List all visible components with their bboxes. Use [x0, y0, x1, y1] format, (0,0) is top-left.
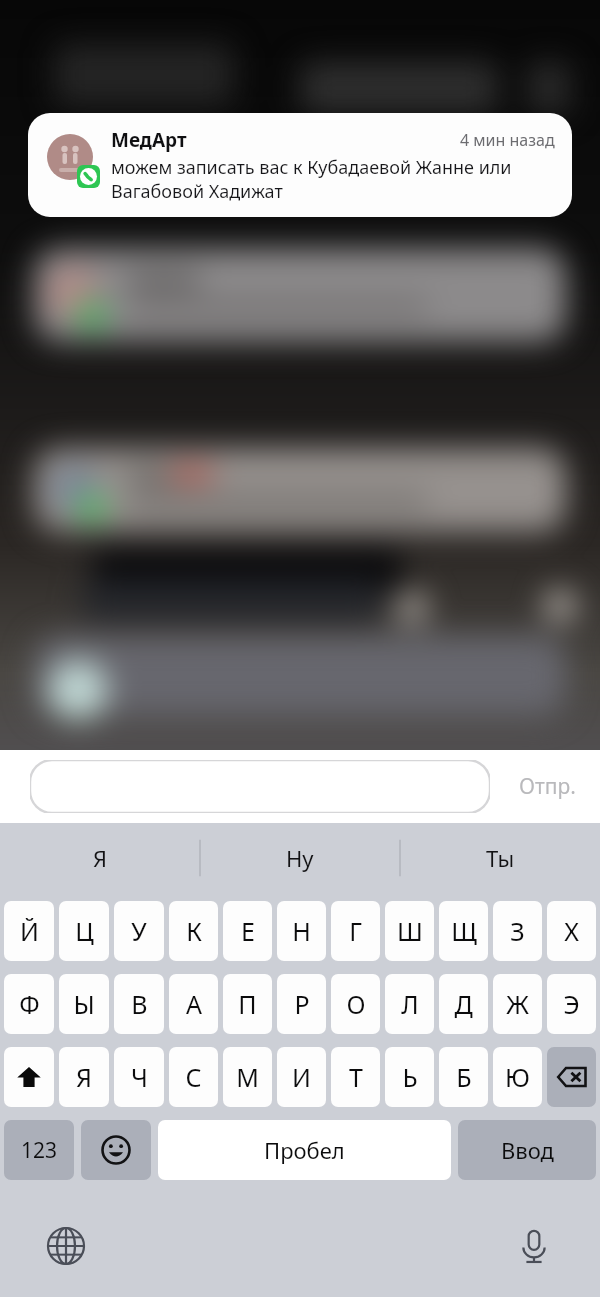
- button[interactable]: Л: [385, 974, 434, 1034]
- button[interactable]: 123: [4, 1120, 74, 1180]
- button[interactable]: Ы: [59, 974, 109, 1034]
- button[interactable]: Э: [547, 974, 596, 1034]
- staticText: Б: [456, 1060, 472, 1094]
- staticText: И: [292, 1060, 311, 1094]
- button[interactable]: Р: [277, 974, 326, 1034]
- staticText: К: [186, 914, 202, 948]
- button[interactable]: П: [223, 974, 272, 1034]
- staticText: Й: [20, 914, 39, 948]
- button[interactable]: Ты: [400, 823, 600, 893]
- button[interactable]: Ввод: [458, 1120, 596, 1180]
- staticText: В: [131, 987, 148, 1021]
- staticText: Ы: [73, 987, 95, 1021]
- button[interactable]: Д: [439, 974, 488, 1034]
- button[interactable]: Ф: [4, 974, 54, 1034]
- button[interactable]: Shift: [4, 1047, 54, 1107]
- staticText: П: [238, 987, 257, 1021]
- staticText: Ввод: [501, 1135, 554, 1165]
- button[interactable]: М: [223, 1047, 272, 1107]
- staticText: Ь: [402, 1060, 418, 1094]
- staticText: Ш: [397, 914, 423, 948]
- button[interactable]: У: [114, 901, 164, 961]
- button[interactable]: [30, 760, 490, 813]
- button[interactable]: Г: [331, 901, 380, 961]
- staticText: Я: [76, 1060, 92, 1094]
- button[interactable]: Change language: [36, 1216, 96, 1276]
- staticText: Э: [563, 987, 580, 1021]
- button[interactable]: Й: [4, 901, 54, 961]
- button[interactable]: В: [114, 974, 164, 1034]
- staticText: Ж: [506, 987, 529, 1021]
- staticText: У: [131, 914, 147, 948]
- button[interactable]: Backspace: [547, 1047, 596, 1107]
- staticText: Г: [349, 914, 362, 948]
- button[interactable]: Е: [223, 901, 272, 961]
- staticText: А: [186, 987, 202, 1021]
- button[interactable]: МедАрт: [28, 113, 572, 217]
- staticText: Ты: [486, 843, 515, 873]
- button[interactable]: Ш: [385, 901, 434, 961]
- button[interactable]: Ч: [114, 1047, 164, 1107]
- button[interactable]: Ж: [493, 974, 542, 1034]
- button[interactable]: Ь: [385, 1047, 434, 1107]
- staticText: Ц: [75, 914, 94, 948]
- staticText: Щ: [451, 914, 477, 948]
- staticText: Отпр.: [519, 772, 576, 801]
- button[interactable]: Н: [277, 901, 326, 961]
- staticText: 4 мин назад: [460, 129, 555, 151]
- staticText: З: [510, 914, 525, 948]
- staticText: Ну: [286, 843, 314, 873]
- button[interactable]: Т: [331, 1047, 380, 1107]
- staticText: С: [185, 1060, 202, 1094]
- button[interactable]: К: [169, 901, 218, 961]
- button[interactable]: Voice input: [504, 1216, 564, 1276]
- button[interactable]: О: [331, 974, 380, 1034]
- staticText: Пробел: [264, 1135, 345, 1165]
- button[interactable]: А: [169, 974, 218, 1034]
- button[interactable]: Ну: [200, 823, 400, 893]
- button[interactable]: Отпр.: [495, 750, 600, 823]
- button[interactable]: Ю: [493, 1047, 542, 1107]
- button[interactable]: Б: [439, 1047, 488, 1107]
- button[interactable]: Я: [59, 1047, 109, 1107]
- staticText: можем записать вас к Кубадаевой Жанне ил…: [111, 155, 555, 203]
- staticText: М: [236, 1060, 259, 1094]
- staticText: Ч: [131, 1060, 148, 1094]
- staticText: Н: [292, 914, 311, 948]
- button[interactable]: Я: [0, 823, 200, 893]
- button[interactable]: И: [277, 1047, 326, 1107]
- button[interactable]: С: [169, 1047, 218, 1107]
- staticText: Я: [93, 843, 108, 873]
- staticText: Л: [401, 987, 419, 1021]
- staticText: Д: [454, 987, 473, 1021]
- button[interactable]: Щ: [439, 901, 488, 961]
- staticText: Т: [349, 1060, 363, 1094]
- staticText: Ю: [505, 1060, 530, 1094]
- button[interactable]: З: [493, 901, 542, 961]
- staticText: Х: [564, 914, 579, 948]
- button[interactable]: Пробел: [158, 1120, 451, 1180]
- staticText: Е: [241, 914, 255, 948]
- staticText: 123: [21, 1136, 58, 1165]
- button[interactable]: Х: [547, 901, 596, 961]
- button[interactable]: Ц: [59, 901, 109, 961]
- staticText: МедАрт: [111, 127, 187, 153]
- button[interactable]: Emoji: [81, 1120, 151, 1180]
- staticText: Ф: [19, 987, 40, 1021]
- staticText: Р: [294, 987, 310, 1021]
- staticText: О: [346, 987, 366, 1021]
